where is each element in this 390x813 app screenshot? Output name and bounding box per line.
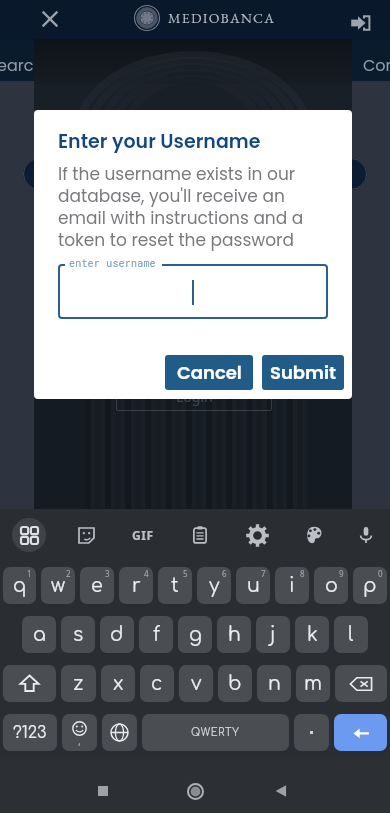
staticText: k [307,624,318,645]
staticText: 5 [183,568,188,579]
button[interactable]: Contacts [350,44,390,85]
staticText: , [78,733,81,748]
button[interactable]: Back [258,768,304,813]
staticText: MEDIOBANCA [85,103,306,143]
button[interactable]: Keyboard tool 6 [349,518,383,552]
button[interactable]: k [295,616,329,653]
staticText: ?123 [13,724,47,742]
button[interactable]: y [197,567,231,604]
button[interactable]: Cancel [165,355,253,390]
staticText: e [91,575,103,596]
button[interactable]: Submit [262,355,344,390]
button[interactable]: g [178,616,212,653]
staticText: 0 [378,568,383,579]
button[interactable]: Keyboard tool 5 [297,518,331,552]
staticText: Submit [270,360,336,385]
button[interactable]: i [275,567,309,604]
button[interactable]: Research [0,44,56,85]
staticText: c [151,673,163,694]
button[interactable]: c [140,665,174,702]
button[interactable]: Recent apps [80,768,126,813]
staticText: a [33,624,46,645]
staticText: s [73,624,84,645]
staticText: l [348,624,354,645]
button[interactable]: q [3,567,36,604]
staticText: m [304,673,322,694]
button[interactable]: v [179,665,213,702]
staticText: 9 [339,568,344,579]
staticText: y [209,575,220,596]
button[interactable]: Keyboard tool 0 [12,518,46,552]
button[interactable]: j [256,616,290,653]
staticText: GIF [132,527,154,543]
staticText: Contacts [363,54,390,76]
staticText: 6 [222,568,227,579]
button[interactable]: z [61,665,96,702]
button[interactable]: l [334,616,368,653]
staticText: 7 [261,568,266,579]
staticText: 8 [300,568,305,579]
staticText: n [268,673,281,694]
button[interactable]: QWERTY [142,714,289,751]
button[interactable]: m [296,665,330,702]
button[interactable]: e [80,567,114,604]
staticText: f [153,624,160,645]
staticText: x [113,673,124,694]
button[interactable]: Shift [3,665,56,702]
staticText: 3 [105,568,110,579]
button[interactable]: Keyboard tool 4 [240,518,274,552]
button[interactable]: t [158,567,192,604]
staticText: w [51,575,66,596]
staticText: 2 [66,568,71,579]
button[interactable]: x [101,665,135,702]
staticText: Cancel [177,360,242,385]
button[interactable] [294,714,329,751]
staticText: MEDIOBANCA [168,9,276,27]
staticText: d [110,624,124,645]
button[interactable]: f [139,616,173,653]
staticText: If the username exists in our database, … [58,162,328,252]
button[interactable]: p [353,567,387,604]
button[interactable]: Login [116,360,274,390]
button[interactable]: n [257,665,291,702]
staticText: g [189,624,202,645]
button[interactable] [23,158,367,190]
button[interactable]: ?123 [3,714,57,751]
button[interactable]: d [100,616,134,653]
staticText: j [270,624,276,645]
button[interactable]: a [22,616,56,653]
button[interactable]: Backspace [335,665,387,702]
button[interactable]: Enter [334,714,387,751]
button[interactable]: Language [102,714,137,751]
button[interactable]: Home [172,768,218,813]
button[interactable]: Keyboard tool 1 [69,518,103,552]
staticText: Login [176,387,213,406]
button[interactable]: w [41,567,75,604]
staticText: q [13,575,27,596]
staticText: z [73,673,84,694]
staticText: h [228,624,241,645]
button[interactable]: Login [350,13,370,33]
button[interactable]: b [218,665,252,702]
staticText: 1 [27,568,32,579]
staticText: i [289,575,295,596]
staticText: 4 [144,568,149,579]
button[interactable]: u [236,567,270,604]
staticText: r [132,575,141,596]
staticText: Research [0,54,44,76]
staticText: Enter your Username [58,128,261,155]
button[interactable]: Keyboard tool 3 [183,518,217,552]
button[interactable]: Emoji [62,714,97,751]
staticText: p [363,575,377,596]
staticText: enter username [69,257,156,270]
button[interactable]: o [314,567,348,604]
button[interactable]: Keyboard tool 2 [126,518,160,552]
button[interactable]: Login [116,381,272,411]
button[interactable]: h [217,616,251,653]
button[interactable]: s [61,616,95,653]
button[interactable]: r [119,567,153,604]
staticText: t [171,575,179,596]
button[interactable]: Close [34,3,66,35]
staticText: Login [177,366,214,385]
staticText: QWERTY [191,727,240,738]
